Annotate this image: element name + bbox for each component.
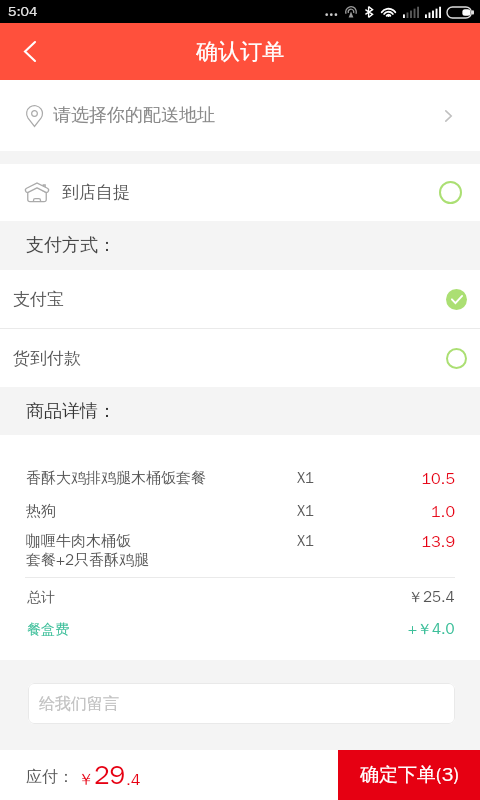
- staticText: 确认订单: [196, 38, 284, 66]
- button[interactable]: 请选择你的配送地址: [0, 80, 480, 151]
- staticText: 10.5: [353, 469, 455, 489]
- staticText: 咖喱牛肉木桶饭 套餐+2只香酥鸡腿: [26, 532, 297, 570]
- staticText: 给我们留言: [39, 694, 119, 714]
- staticText: 到店自提: [62, 182, 130, 203]
- staticText: 29: [94, 759, 126, 792]
- staticText: +￥4.0: [408, 620, 455, 639]
- button[interactable]: Back: [15, 36, 45, 66]
- staticText: .4: [126, 770, 141, 790]
- staticText: ￥: [78, 770, 94, 790]
- staticText: 应付：: [26, 767, 74, 787]
- staticText: 支付宝: [13, 289, 64, 310]
- staticText: 请选择你的配送地址: [53, 104, 215, 127]
- staticText: 货到付款: [13, 348, 81, 369]
- staticText: X1: [297, 502, 353, 521]
- staticText: 总计: [27, 589, 55, 607]
- staticText: 确定下单(3): [360, 763, 459, 787]
- staticText: ￥25.4: [408, 588, 455, 607]
- button[interactable]: 给我们留言: [28, 683, 455, 724]
- button[interactable]: 支付宝: [0, 270, 480, 328]
- button[interactable]: 确定下单(3): [338, 750, 480, 800]
- staticText: 5:04: [8, 3, 38, 21]
- button[interactable]: 货到付款: [0, 329, 480, 387]
- staticText: 香酥大鸡排鸡腿木桶饭套餐: [26, 469, 297, 488]
- staticText: 1.0: [353, 502, 455, 522]
- staticText: 热狗: [26, 502, 297, 521]
- staticText: X1: [297, 532, 353, 551]
- staticText: X1: [297, 469, 353, 488]
- staticText: 餐盒费: [27, 621, 69, 639]
- staticText: 商品详情：: [26, 400, 116, 423]
- button[interactable]: 到店自提: [0, 164, 480, 221]
- staticText: 支付方式：: [26, 234, 116, 257]
- staticText: 13.9: [353, 532, 455, 552]
